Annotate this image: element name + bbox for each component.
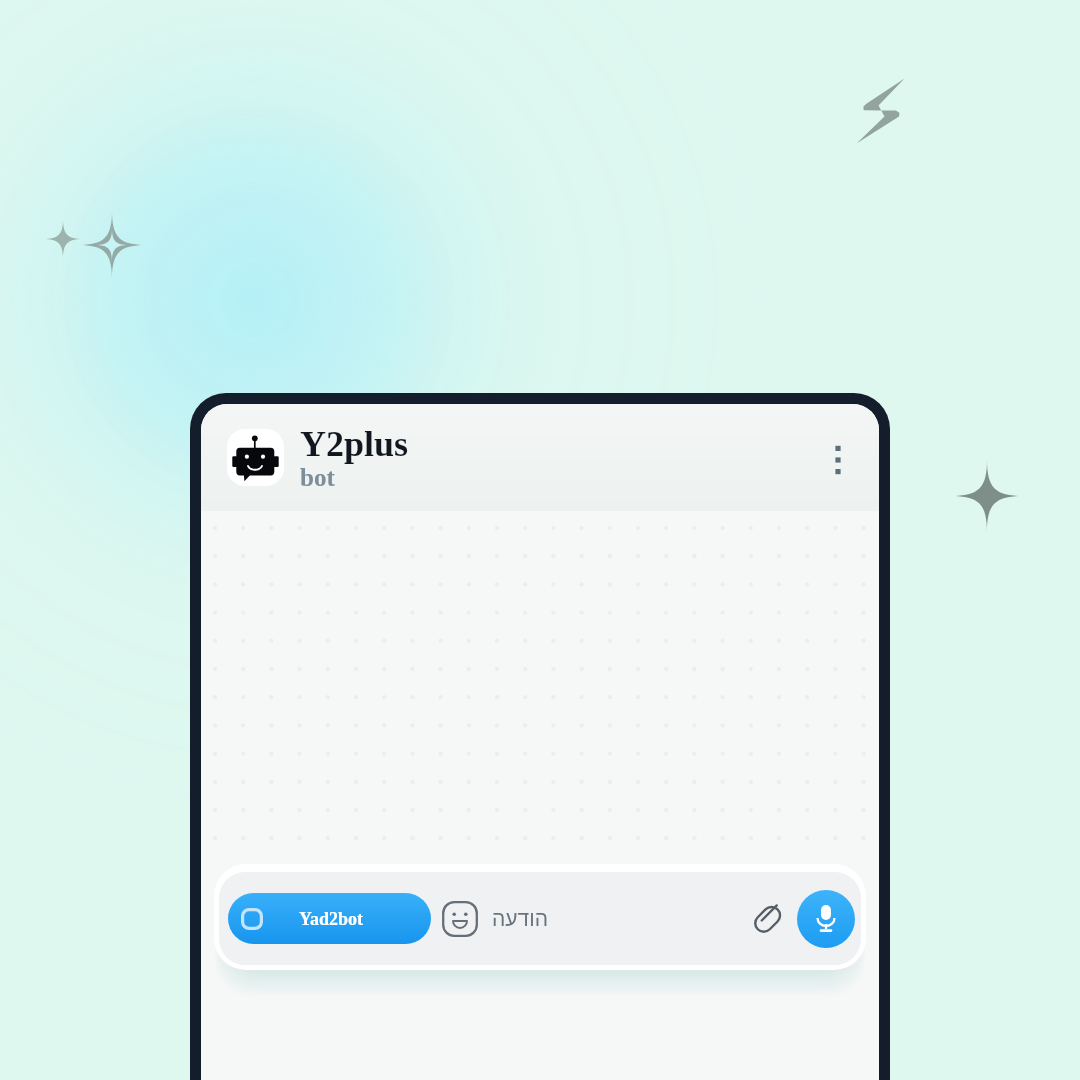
button[interactable]: Emoji [442,901,478,937]
button[interactable]: More options [816,438,860,482]
staticText: הודעה [492,907,548,930]
staticText: Yad2bot [299,909,364,929]
button[interactable]: Attach file [748,899,788,939]
button[interactable]: Yad2bot [228,893,431,944]
staticText: bot [300,464,335,492]
button[interactable]: Record voice message [797,890,855,948]
staticText: Y2plus [300,424,409,464]
